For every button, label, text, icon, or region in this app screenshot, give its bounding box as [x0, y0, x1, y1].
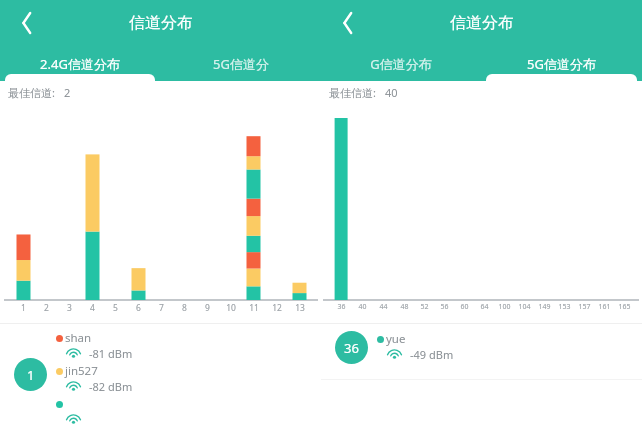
button[interactable]: 36 — [321, 331, 642, 364]
staticText: 40 — [385, 85, 398, 100]
staticText: 8 — [182, 302, 187, 314]
button[interactable]: Back — [6, 2, 48, 44]
button[interactable]: 5G信道分 — [160, 46, 321, 81]
staticText: 100 — [498, 302, 511, 312]
staticText: 9 — [205, 302, 210, 314]
staticText: 5G信道分布 — [527, 55, 596, 73]
staticText: 2 — [64, 85, 71, 100]
staticText: 64 — [480, 302, 489, 312]
button[interactable]: Back — [327, 2, 369, 44]
staticText: 153 — [558, 302, 571, 312]
staticText: jin527 — [65, 363, 98, 379]
staticText: G信道分布 — [370, 55, 432, 73]
staticText: 104 — [518, 302, 531, 312]
staticText: 5 — [113, 302, 118, 314]
staticText: 36 — [337, 302, 346, 312]
staticText: 36 — [344, 339, 359, 357]
staticText: 56 — [440, 302, 449, 312]
staticText: 6 — [136, 302, 141, 314]
button[interactable]: G信道分布 — [321, 46, 481, 81]
staticText: 149 — [538, 302, 551, 312]
staticText: -82 dBm — [89, 379, 133, 394]
staticText: 165 — [618, 302, 631, 312]
staticText: 7 — [159, 302, 164, 314]
staticText: 157 — [578, 302, 591, 312]
staticText: yue — [386, 331, 406, 347]
staticText: 11 — [249, 302, 259, 314]
staticText: 44 — [379, 302, 388, 312]
staticText: 48 — [400, 302, 409, 312]
staticText: -81 dBm — [89, 346, 133, 361]
staticText: 信道分布 — [450, 13, 514, 33]
staticText: 1 — [27, 366, 35, 384]
staticText: 最佳信道: — [329, 85, 376, 100]
staticText: 1 — [21, 302, 26, 314]
staticText: 5G信道分 — [213, 55, 269, 73]
staticText: 4 — [90, 302, 95, 314]
staticText: 信道分布 — [129, 13, 193, 33]
button[interactable]: 2.4G信道分布 — [0, 46, 160, 81]
button[interactable]: 1 — [0, 330, 321, 433]
staticText: 12 — [272, 302, 282, 314]
button[interactable]: 5G信道分布 — [481, 46, 642, 81]
staticText: shan — [65, 330, 92, 346]
staticText: 52 — [420, 302, 429, 312]
staticText: 40 — [358, 302, 367, 312]
staticText: 2.4G信道分布 — [40, 55, 120, 73]
staticText: 2 — [44, 302, 49, 314]
staticText: 10 — [226, 302, 236, 314]
staticText: 60 — [460, 302, 469, 312]
staticText: 161 — [598, 302, 611, 312]
staticText: 最佳信道: — [8, 85, 55, 100]
staticText: 13 — [295, 302, 305, 314]
staticText: -49 dBm — [410, 347, 454, 362]
staticText: 3 — [67, 302, 72, 314]
